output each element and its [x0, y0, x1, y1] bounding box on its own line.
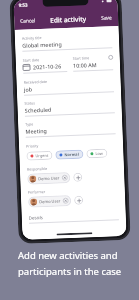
staticText: participants in the case — [18, 265, 122, 278]
staticText: Add new activities and — [18, 249, 118, 262]
button[interactable]: Add participant — [74, 196, 83, 205]
staticText: Start date — [23, 57, 40, 63]
staticText: 9:53 — [18, 1, 28, 8]
staticText: Low — [95, 151, 103, 156]
staticText: Meeting — [25, 127, 48, 135]
staticText: Cancel — [20, 17, 35, 25]
staticText: Demo User — [38, 175, 60, 181]
staticText: Start time — [73, 55, 90, 61]
button[interactable]: Cancel — [19, 16, 36, 26]
button[interactable]: Activity title — [22, 32, 112, 52]
other: Pick date — [23, 63, 30, 71]
button[interactable]: Add participant — [73, 173, 82, 182]
staticText: Save — [101, 14, 112, 22]
staticText: Urgent — [35, 153, 48, 158]
staticText: 2021-10-26 — [33, 62, 62, 70]
staticText: Status — [24, 100, 35, 106]
staticText: Normal — [64, 152, 79, 157]
staticText: 10:00 AM — [73, 61, 97, 69]
button[interactable]: Normal — [55, 149, 83, 160]
staticText: Responsible — [27, 166, 48, 172]
staticText: Global meeting — [22, 40, 62, 49]
button[interactable]: Demo User — [28, 195, 71, 208]
staticText: Edit activity — [50, 14, 86, 25]
button[interactable]: Received date — [23, 76, 114, 96]
button[interactable]: Demo User — [27, 172, 70, 185]
button[interactable]: Type — [25, 118, 116, 138]
button[interactable]: Status — [24, 97, 115, 117]
staticText: Received date — [23, 79, 48, 85]
staticText: Demo User — [39, 198, 61, 204]
staticText: Activity title — [22, 35, 42, 41]
button[interactable]: Save — [100, 13, 113, 23]
staticText: Details — [29, 214, 44, 221]
button[interactable]: Urgent — [26, 151, 53, 161]
other: Remove — [62, 175, 67, 180]
staticText: Priority — [26, 143, 39, 149]
staticText: Type — [25, 121, 33, 127]
button[interactable]: Low — [86, 149, 107, 158]
staticText: Performer — [28, 189, 46, 195]
other: Remove — [63, 198, 68, 203]
staticText: Scheduled — [24, 106, 52, 114]
staticText: job — [24, 85, 33, 93]
